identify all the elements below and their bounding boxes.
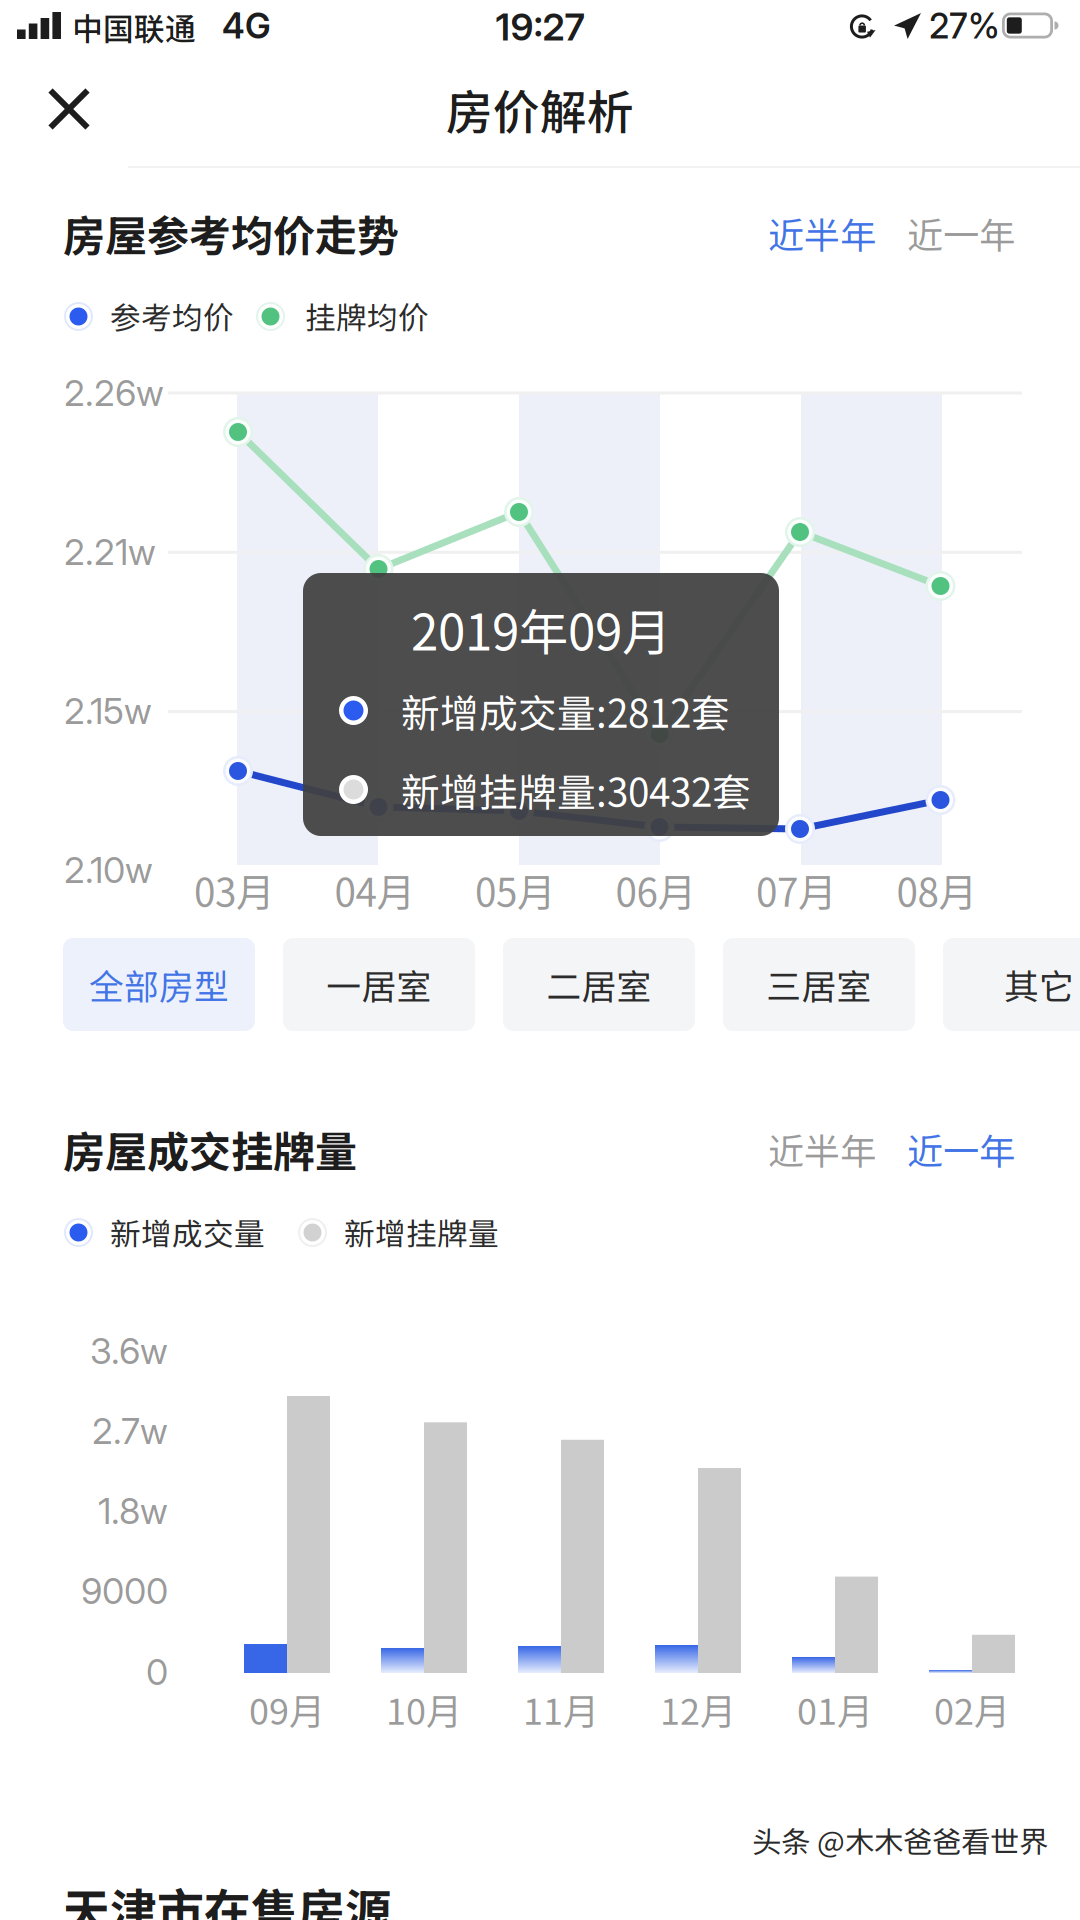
staticText: 头条 @木木爸爸看世界	[752, 1819, 1048, 1861]
staticText: 0	[146, 1650, 168, 1694]
button[interactable]: 一居室	[283, 938, 475, 1031]
staticText: 近一年	[907, 1123, 1015, 1175]
staticText: 2.10w	[64, 848, 153, 892]
staticText: 全部房型	[89, 959, 229, 1010]
button[interactable]: 其它	[943, 938, 1080, 1031]
staticText: 08月	[896, 862, 977, 918]
staticText: 新增挂牌量	[344, 1210, 499, 1254]
staticText: 房屋参考均价走势	[63, 203, 399, 263]
staticText: 10月	[386, 1683, 462, 1735]
button[interactable]: 全部房型	[63, 938, 255, 1031]
staticText: 2.26w	[64, 371, 164, 415]
staticText: 房屋成交挂牌量	[63, 1119, 357, 1179]
staticText: 07月	[756, 862, 837, 918]
staticText: 一居室	[326, 959, 431, 1010]
staticText: 参考均价	[110, 294, 234, 338]
staticText: 03月	[194, 862, 275, 918]
staticText: 06月	[615, 862, 696, 918]
staticText: 三居室	[766, 959, 871, 1010]
staticText: 9000	[81, 1569, 168, 1613]
staticText: 2019年09月	[411, 593, 671, 665]
staticText: 11月	[523, 1683, 599, 1735]
staticText: 2.21w	[64, 530, 156, 574]
button[interactable]: 近半年	[0, 0, 876, 60]
staticText: 中国联通	[72, 5, 196, 49]
staticText: 02月	[934, 1683, 1010, 1735]
staticText: 01月	[797, 1683, 873, 1735]
button[interactable]: 近半年	[0, 0, 876, 60]
staticText: 挂牌均价	[305, 294, 429, 338]
staticText: 新增成交量	[110, 1210, 265, 1254]
staticText: 新增成交量:2812套	[401, 683, 730, 739]
staticText: 4G	[222, 5, 271, 47]
staticText: 1.8w	[98, 1489, 168, 1533]
button[interactable]: 二居室	[503, 938, 695, 1031]
staticText: 09月	[249, 1683, 325, 1735]
staticText: 04月	[334, 862, 415, 918]
button[interactable]: 近一年	[0, 0, 1015, 60]
staticText: 房价解析	[446, 75, 634, 143]
staticText: 3.6w	[90, 1329, 168, 1373]
staticText: 其它	[1004, 959, 1074, 1010]
staticText: 2.15w	[64, 689, 152, 733]
staticText: 新增挂牌量:30432套	[401, 762, 751, 818]
staticText: 05月	[475, 862, 556, 918]
button[interactable]: 三居室	[723, 938, 915, 1031]
staticText: 近半年	[768, 1123, 876, 1175]
staticText: 19:27	[495, 4, 584, 50]
staticText: 二居室	[546, 959, 651, 1010]
button[interactable]: 关闭	[0, 0, 110, 100]
button[interactable]: 近一年	[0, 0, 1015, 60]
staticText: 近半年	[768, 207, 876, 259]
staticText: 27%	[929, 5, 1000, 47]
staticText: 2.7w	[92, 1409, 168, 1453]
staticText: 12月	[660, 1683, 736, 1735]
staticText: 天津市在售房源	[63, 1874, 392, 1920]
staticText: 近一年	[907, 207, 1015, 259]
